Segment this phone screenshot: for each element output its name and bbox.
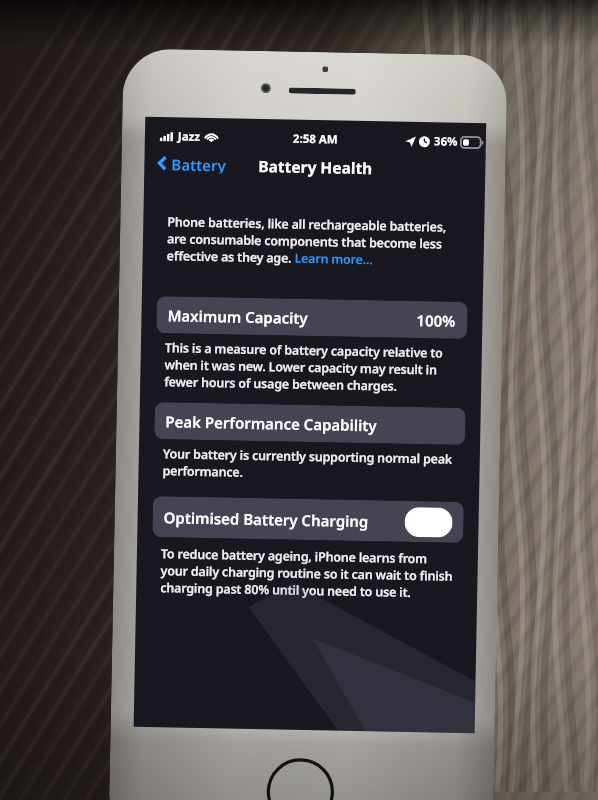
button[interactable]: Optimised Battery Charging: [152, 496, 464, 543]
button[interactable]: Maximum Capacity: [156, 296, 468, 339]
staticText: Battery: [171, 154, 226, 173]
staticText: This is a measure of battery capacity re…: [164, 339, 443, 395]
staticText: Optimised Battery Charging: [163, 507, 369, 531]
staticText: Your battery is currently supporting nor…: [162, 445, 453, 485]
staticText: 2:58 AM: [293, 131, 338, 148]
staticText: Battery Health: [258, 155, 373, 178]
button[interactable]: Optimised Battery Charging toggle: [404, 507, 453, 538]
staticText: Maximum Capacity: [167, 305, 309, 328]
button[interactable]: Battery: [153, 150, 231, 177]
staticText: 100%: [416, 310, 456, 331]
button[interactable]: Peak Performance Capability: [154, 402, 466, 445]
staticText: 36%: [434, 133, 458, 150]
staticText: To reduce battery ageing, iPhone learns …: [160, 545, 453, 602]
staticText: Phone batteries, like all rechargeable b…: [166, 213, 446, 270]
staticText: Peak Performance Capability: [165, 411, 378, 435]
staticText: Jazz: [178, 128, 201, 145]
